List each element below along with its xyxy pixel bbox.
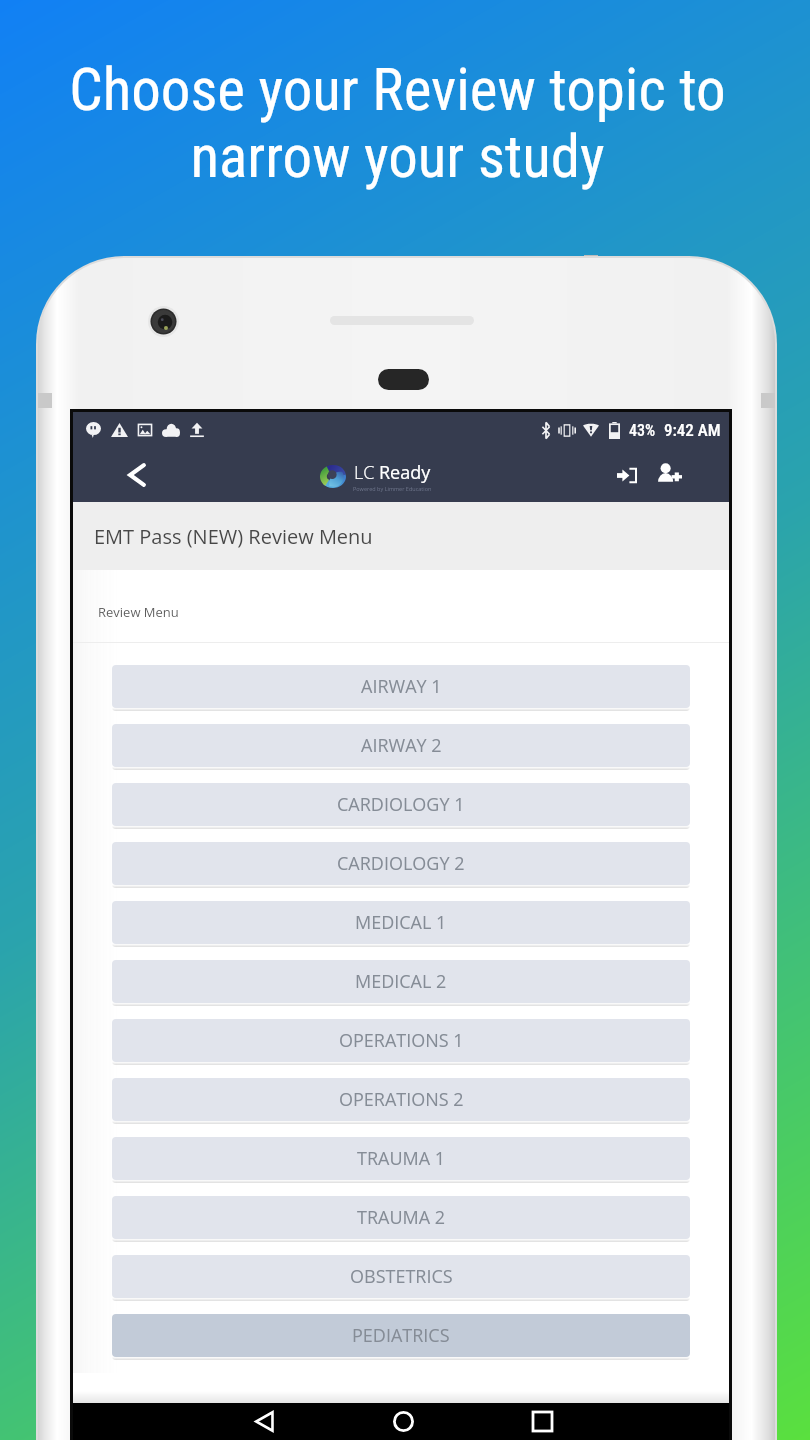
staticText: 9:42 AM bbox=[664, 420, 721, 440]
button[interactable]: Back bbox=[114, 452, 160, 498]
button[interactable]: Recents bbox=[522, 1403, 562, 1440]
staticText: Powered by Limmer Education bbox=[353, 485, 432, 492]
staticText: AIRWAY 1 bbox=[361, 674, 442, 699]
staticText: TRAUMA 2 bbox=[357, 1205, 446, 1230]
button[interactable]: MEDICAL 2 bbox=[112, 960, 690, 1003]
button[interactable]: TRAUMA 1 bbox=[112, 1137, 690, 1180]
staticText: CARDIOLOGY 1 bbox=[337, 792, 465, 817]
staticText: MEDICAL 1 bbox=[355, 910, 447, 935]
staticText: Ready bbox=[379, 460, 431, 485]
button[interactable]: MEDICAL 1 bbox=[112, 901, 690, 944]
button[interactable]: OPERATIONS 1 bbox=[112, 1019, 690, 1062]
staticText: TRAUMA 1 bbox=[357, 1146, 446, 1171]
button[interactable]: AIRWAY 2 bbox=[112, 724, 690, 767]
button[interactable]: PEDIATRICS bbox=[112, 1314, 690, 1357]
staticText: LC bbox=[354, 460, 375, 485]
staticText: OBSTETRICS bbox=[350, 1264, 453, 1289]
staticText: CARDIOLOGY 2 bbox=[337, 851, 465, 876]
button[interactable]: AIRWAY 1 bbox=[112, 665, 690, 708]
button[interactable]: Add account bbox=[648, 453, 690, 495]
button[interactable]: Back bbox=[244, 1403, 284, 1440]
staticText: EMT Pass (NEW) Review Menu bbox=[94, 523, 373, 550]
staticText: Choose your Review topic to narrow your … bbox=[69, 55, 726, 191]
button[interactable]: CARDIOLOGY 2 bbox=[112, 842, 690, 885]
staticText: 43% bbox=[629, 421, 656, 440]
staticText: AIRWAY 2 bbox=[361, 733, 442, 758]
staticText: OPERATIONS 1 bbox=[339, 1028, 464, 1053]
button[interactable]: CARDIOLOGY 1 bbox=[112, 783, 690, 826]
staticText: MEDICAL 2 bbox=[355, 969, 447, 994]
button[interactable]: OPERATIONS 2 bbox=[112, 1078, 690, 1121]
staticText: OPERATIONS 2 bbox=[339, 1087, 464, 1112]
staticText: PEDIATRICS bbox=[352, 1323, 450, 1348]
button[interactable]: Home bbox=[383, 1403, 423, 1440]
staticText: Review Menu bbox=[98, 603, 179, 621]
button[interactable]: OBSTETRICS bbox=[112, 1255, 690, 1298]
button[interactable]: Log in bbox=[606, 454, 648, 496]
button[interactable]: TRAUMA 2 bbox=[112, 1196, 690, 1239]
